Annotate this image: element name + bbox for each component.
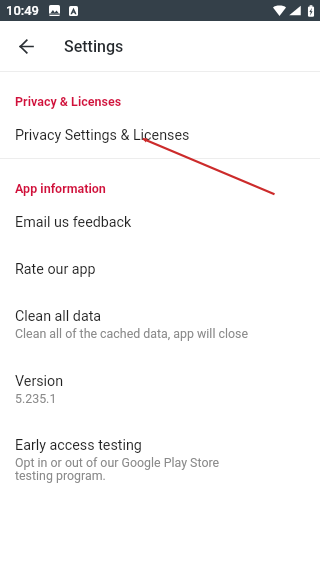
button[interactable]: Back [8, 28, 44, 64]
staticText: Opt in or out of our Google Play Store t… [15, 455, 220, 483]
staticText: 10:49 [6, 3, 40, 18]
staticText: Rate our app [15, 261, 96, 278]
staticText: App information [15, 181, 106, 196]
staticText: Clean all data [15, 308, 102, 325]
staticText: Early access testing [15, 437, 142, 454]
button[interactable]: Clean all data [0, 278, 320, 341]
staticText: Email us feedback [15, 214, 132, 231]
button[interactable]: Email us feedback [0, 196, 320, 231]
button[interactable]: Privacy Settings & Licenses [0, 109, 320, 144]
staticText: 5.235.1 [15, 391, 57, 406]
staticText: Privacy & Licenses [15, 94, 122, 109]
staticText: Clean all of the cached data, app will c… [15, 326, 248, 341]
staticText: Privacy Settings & Licenses [15, 127, 190, 144]
staticText: Settings [64, 37, 124, 56]
button[interactable]: Early access testing [0, 406, 320, 483]
button[interactable]: Version [0, 341, 320, 406]
staticText: Version [15, 373, 64, 390]
button[interactable]: Rate our app [0, 231, 320, 278]
